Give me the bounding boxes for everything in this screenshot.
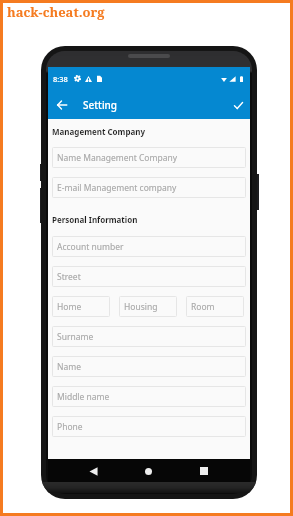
- button[interactable]: Home: [52, 296, 110, 317]
- button[interactable]: Room: [186, 296, 244, 317]
- button[interactable]: E-mail Management company: [52, 177, 246, 198]
- button[interactable]: Phone: [52, 416, 246, 437]
- button[interactable]: Middle name: [52, 386, 246, 407]
- button[interactable]: Back: [82, 460, 104, 482]
- staticText: Phone: [57, 421, 83, 433]
- staticText: Account number: [57, 241, 124, 253]
- staticText: Room: [191, 301, 215, 313]
- button[interactable]: Housing: [119, 296, 177, 317]
- staticText: Home: [57, 301, 82, 313]
- staticText: Setting: [83, 98, 118, 112]
- staticText: hack-cheat.org: [7, 3, 105, 21]
- button[interactable]: Name Management Company: [52, 147, 246, 168]
- button[interactable]: Home: [137, 460, 159, 482]
- button[interactable]: Back: [50, 93, 74, 117]
- staticText: E-mail Management company: [57, 182, 177, 194]
- button[interactable]: Account number: [52, 236, 246, 257]
- staticText: Surname: [57, 331, 94, 343]
- staticText: 8:38: [53, 74, 68, 84]
- staticText: Name Management Company: [57, 152, 178, 164]
- staticText: Street: [57, 271, 81, 283]
- button[interactable]: Street: [52, 266, 246, 287]
- button[interactable]: Name: [52, 356, 246, 377]
- staticText: Name: [57, 361, 81, 373]
- staticText: Management Company: [52, 126, 146, 137]
- button[interactable]: Save: [226, 93, 250, 117]
- staticText: Housing: [124, 301, 158, 313]
- staticText: Personal Information: [52, 214, 138, 225]
- button[interactable]: Surname: [52, 326, 246, 347]
- staticText: Middle name: [57, 391, 110, 403]
- button[interactable]: Recents: [193, 460, 215, 482]
